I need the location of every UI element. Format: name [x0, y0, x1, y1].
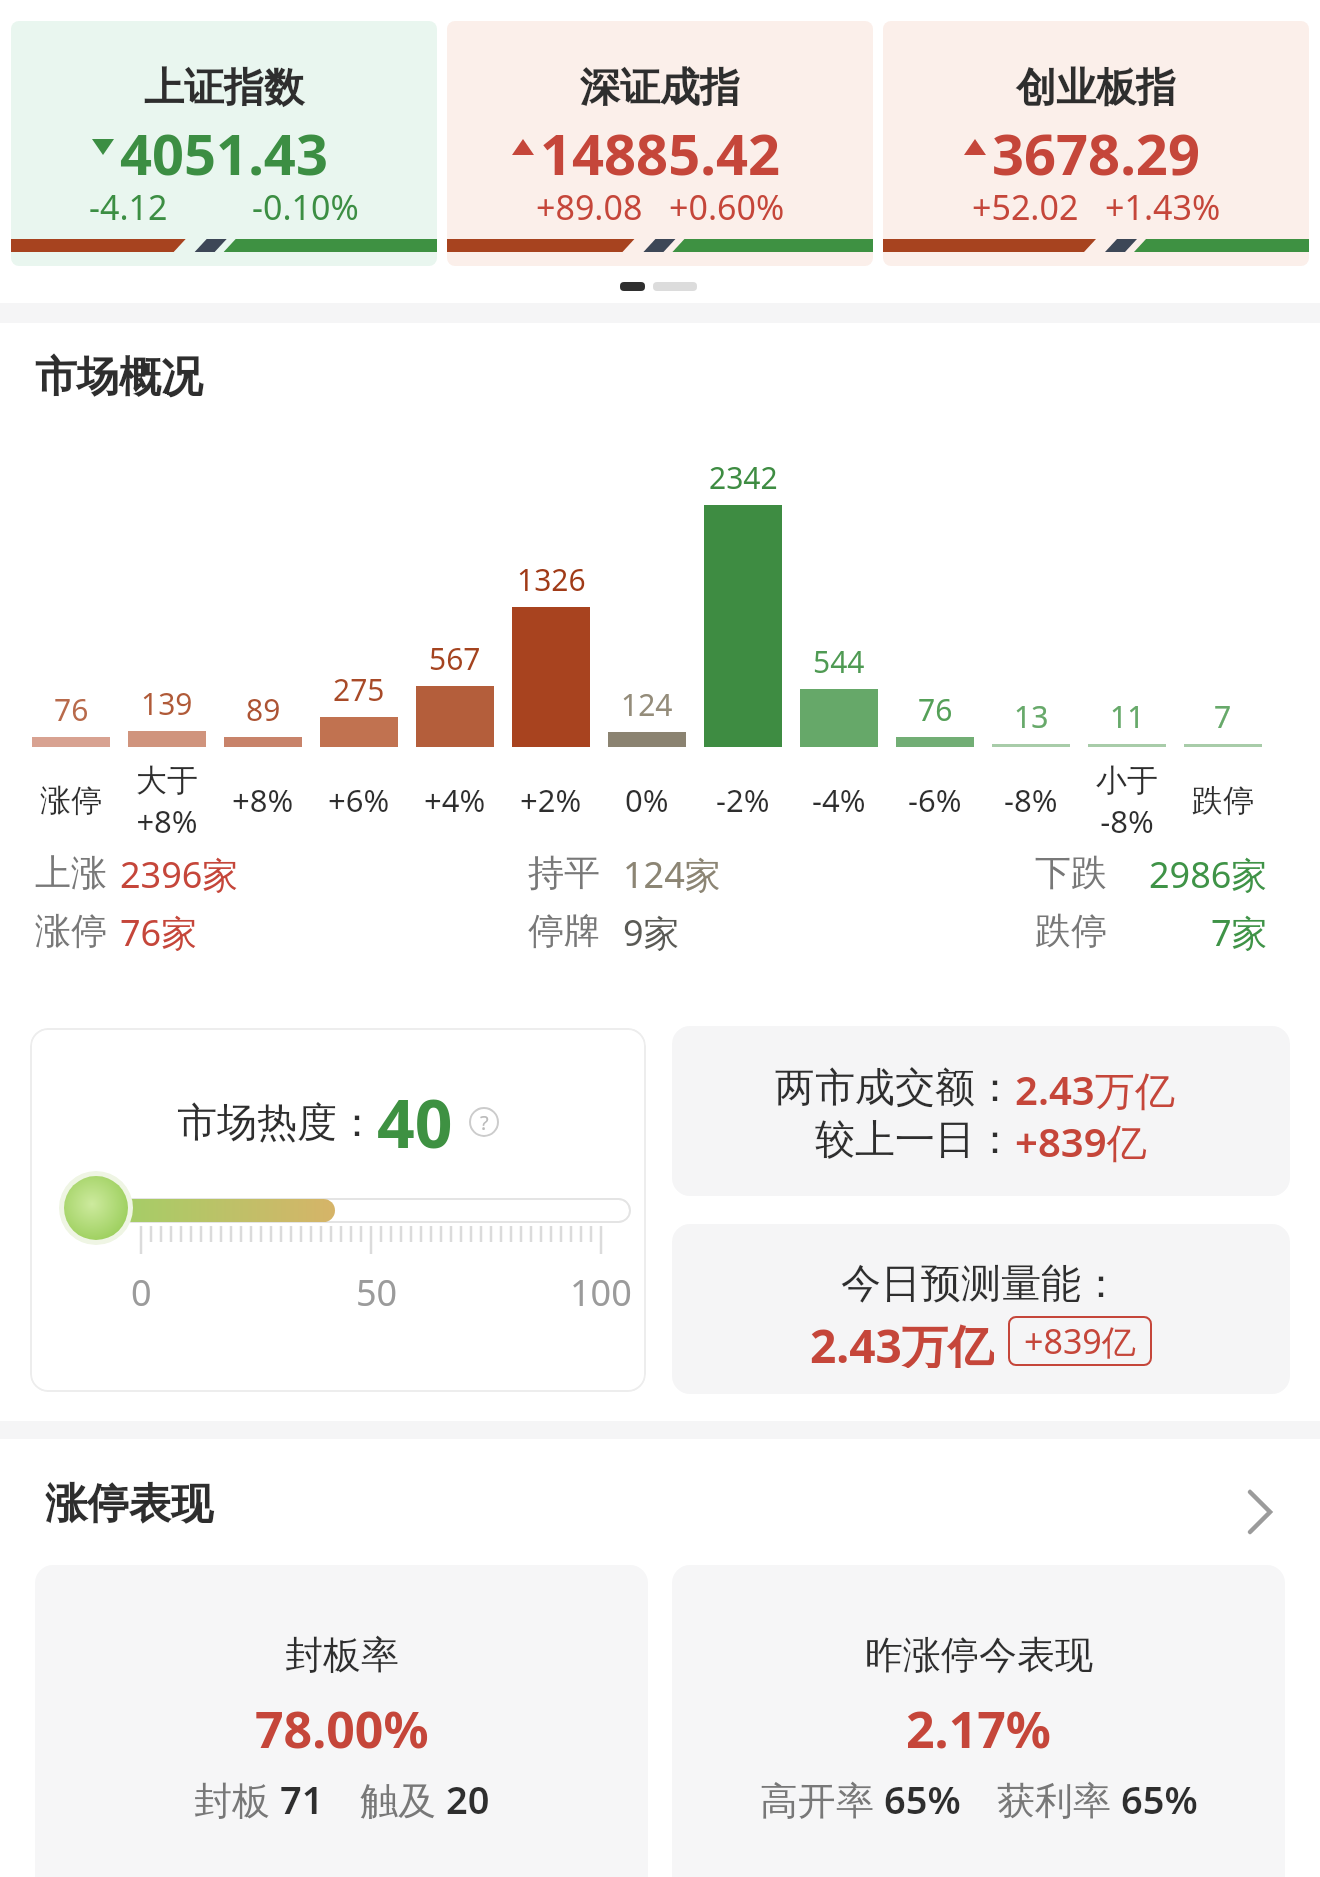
staticText: 65% [1121, 1773, 1198, 1821]
staticText: 76 [918, 689, 953, 729]
staticText: +0.60% [669, 184, 785, 230]
button[interactable]: 封板率 [35, 1565, 648, 1877]
staticText: 76家 [120, 908, 198, 952]
staticText: +1.43% [1105, 184, 1221, 230]
staticText: -6% [908, 779, 962, 821]
staticText: +52.02 [972, 184, 1079, 230]
staticText: 封板 [194, 1773, 280, 1821]
staticText: -8% [1004, 779, 1058, 821]
staticText: 50 [356, 1268, 398, 1310]
staticText: +2% [520, 779, 582, 821]
staticText: 深证成指 [580, 62, 740, 112]
staticText: 两市成交额： [775, 1062, 1015, 1112]
button[interactable]: 涨停表现 [0, 1462, 1320, 1548]
staticText: 2.17% [906, 1695, 1051, 1755]
staticText: 2.43万亿 [1015, 1062, 1175, 1112]
staticText: 上证指数 [144, 62, 304, 112]
staticText: +839亿 [1024, 1318, 1136, 1364]
staticText: 下跌 [1035, 850, 1107, 894]
button[interactable]: 两市成交额： [672, 1026, 1290, 1196]
staticText: 1326 [517, 559, 586, 599]
button[interactable]: 创业板指 [883, 21, 1309, 266]
staticText: 89 [246, 689, 281, 729]
button[interactable]: 市场热度： [30, 1028, 646, 1392]
staticText: -4.12 [89, 184, 168, 230]
staticText: 4051.43 [120, 115, 328, 179]
staticText: 市场概况 [35, 351, 203, 404]
staticText: 40 [377, 1077, 453, 1167]
staticText: +4% [424, 779, 486, 821]
staticText: 139 [141, 683, 193, 723]
staticText: 100 [570, 1268, 632, 1310]
staticText: 124 [621, 684, 673, 724]
staticText: 大于 +8% [136, 761, 198, 842]
staticText: +89.08 [536, 184, 643, 230]
staticText: 9家 [623, 908, 680, 952]
staticText: 跌停 [1035, 908, 1107, 952]
staticText: +839亿 [1015, 1114, 1147, 1164]
staticText: 78.00% [255, 1695, 429, 1755]
staticText: 上涨 [35, 850, 107, 894]
staticText: 11 [1110, 696, 1145, 736]
staticText: 今日预测量能： [841, 1258, 1121, 1308]
staticText: 7家 [1211, 908, 1268, 952]
staticText: 触及 [360, 1773, 446, 1821]
staticText: 2986家 [1149, 850, 1268, 894]
staticText: 2396家 [120, 850, 239, 894]
staticText: -4% [812, 779, 866, 821]
staticText: 124家 [623, 850, 721, 894]
staticText: 2342 [709, 457, 778, 497]
button[interactable]: 昨涨停今表现 [672, 1565, 1285, 1877]
staticText: 获利率 [997, 1773, 1121, 1821]
staticText: 创业板指 [1016, 62, 1176, 112]
staticText: 13 [1014, 696, 1049, 736]
staticText: 高开率 [760, 1773, 884, 1821]
staticText: 昨涨停今表现 [865, 1631, 1093, 1679]
staticText: 涨停表现 [45, 1478, 213, 1531]
staticText: 持平 [528, 850, 600, 894]
staticText: ? [480, 1109, 489, 1136]
staticText: 小于 -8% [1096, 761, 1158, 842]
staticText: 0 [131, 1268, 152, 1310]
staticText: +6% [328, 779, 390, 821]
staticText: 544 [813, 641, 865, 681]
staticText: -2% [716, 779, 770, 821]
staticText: 涨停 [35, 908, 107, 952]
staticText: -0.10% [252, 184, 359, 230]
staticText: 跌停 [1192, 781, 1254, 820]
staticText: 2.43万亿 [810, 1314, 994, 1368]
staticText: 20 [446, 1773, 490, 1821]
button[interactable]: 今日预测量能： [672, 1224, 1290, 1394]
staticText: +8% [232, 779, 294, 821]
staticText: 停牌 [528, 908, 600, 952]
staticText: 市场热度： [177, 1097, 377, 1147]
staticText: 76 [54, 689, 89, 729]
staticText: 71 [280, 1773, 324, 1821]
staticText: 0% [625, 779, 669, 821]
button[interactable]: 上证指数 [11, 21, 437, 266]
button[interactable]: 深证成指 [447, 21, 873, 266]
staticText: 567 [429, 638, 481, 678]
staticText: 封板率 [285, 1631, 399, 1679]
staticText: 14885.42 [540, 115, 780, 179]
staticText: 65% [884, 1773, 961, 1821]
staticText: 7 [1214, 696, 1232, 736]
staticText: 涨停 [40, 781, 102, 820]
staticText: 较上一日： [815, 1114, 1015, 1164]
staticText: 275 [333, 669, 385, 709]
staticText: 3678.29 [992, 115, 1200, 179]
